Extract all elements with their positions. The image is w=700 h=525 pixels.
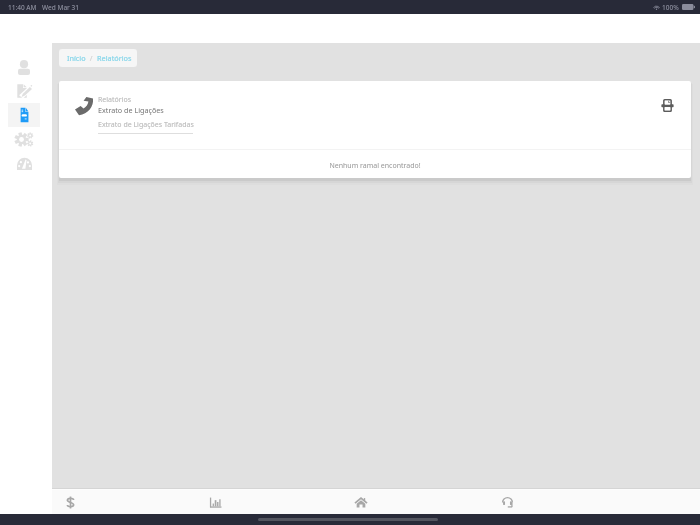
button[interactable]: Relatorios xyxy=(8,103,40,127)
staticText: 100% xyxy=(662,3,679,12)
button[interactable]: Início xyxy=(59,49,137,67)
button[interactable]: Inicio xyxy=(288,490,434,514)
staticText: 11:40 AM xyxy=(8,3,37,12)
staticText: Extrato de Ligações Tarifadas xyxy=(98,120,194,130)
button[interactable]: Financeiro xyxy=(0,490,143,514)
button[interactable]: Painel xyxy=(8,151,40,175)
staticText: Extrato de Ligações xyxy=(98,105,164,115)
staticText: Nenhum ramal encontrado! xyxy=(329,161,421,171)
staticText: Início xyxy=(67,53,86,63)
button[interactable]: Cadastro xyxy=(8,79,40,103)
staticText: Relatórios xyxy=(97,53,132,63)
button[interactable]: Configuracoes xyxy=(8,127,40,151)
button[interactable]: Extrato de Ligações Tarifadas xyxy=(98,120,194,134)
button[interactable]: Graficos xyxy=(143,490,288,514)
button[interactable]: Suporte xyxy=(434,490,580,514)
staticText: Relatórios xyxy=(98,95,132,105)
button[interactable]: Imprimir xyxy=(657,95,678,116)
staticText: Wed Mar 31 xyxy=(42,3,79,12)
button[interactable]: Contatos xyxy=(8,55,40,79)
staticText: / xyxy=(86,53,97,63)
